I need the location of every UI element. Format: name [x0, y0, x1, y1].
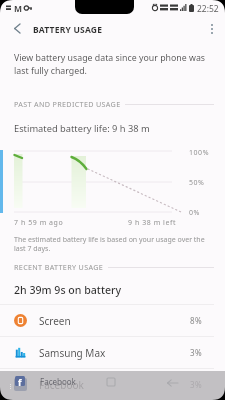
staticText: PAST AND PREDICTED USAGE [14, 99, 121, 109]
staticText: 9 h 38 m left [128, 218, 177, 228]
staticText: M [14, 3, 23, 15]
staticText: 100% [189, 148, 210, 158]
button[interactable]: Samsung Max [0, 337, 225, 368]
button[interactable]: Recent apps [105, 376, 117, 388]
staticText: Screen [39, 314, 71, 328]
staticText: 3% [190, 379, 202, 390]
staticText: 0% [189, 208, 200, 218]
staticText: 3% [190, 347, 202, 358]
staticText: Estimated battery life: 9 h 38 m [14, 122, 150, 135]
staticText: The estimated battery life is based on y… [14, 235, 205, 253]
staticText: 8% [190, 315, 202, 326]
button[interactable]: Screen [0, 305, 225, 336]
staticText: 2h 39m 9s on battery [14, 283, 122, 297]
button[interactable]: Back [6, 18, 27, 39]
staticText: 50% [189, 178, 205, 188]
staticText: View battery usage data since your phone… [14, 52, 206, 76]
staticText: Facebook [40, 376, 76, 387]
staticText: Facebook [39, 378, 84, 392]
button[interactable]: Overflow [5, 381, 15, 391]
staticText: 7 h 59 m ago [14, 218, 64, 228]
button[interactable]: Facebook [0, 369, 225, 400]
staticText: 22:52 [197, 3, 219, 15]
button[interactable]: More options [201, 18, 222, 39]
staticText: BATTERY USAGE [33, 24, 103, 36]
staticText: RECENT BATTERY USAGE [14, 262, 104, 272]
staticText: Samsung Max [39, 346, 106, 360]
staticText: f [18, 376, 22, 386]
button[interactable]: Back [165, 376, 179, 390]
